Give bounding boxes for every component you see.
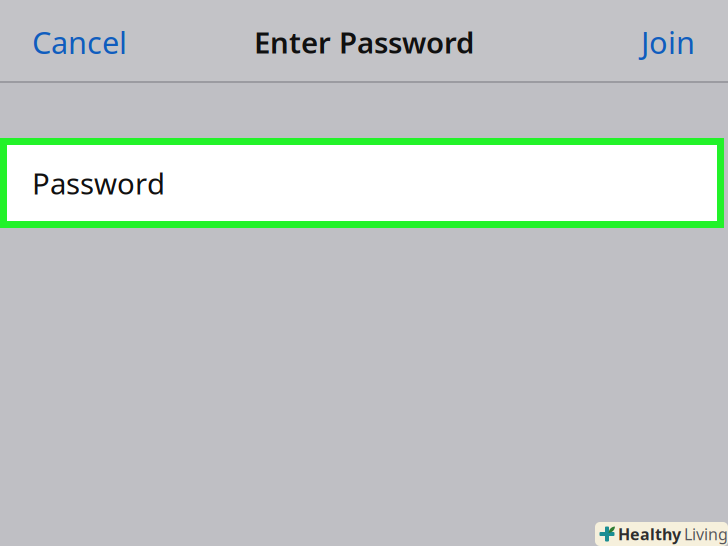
- staticText: Healthy: [618, 523, 681, 545]
- staticText: Password: [32, 163, 165, 202]
- staticText: Join: [641, 22, 695, 62]
- button[interactable]: Password: [7, 145, 717, 221]
- button[interactable]: Join: [621, 0, 728, 83]
- staticText: Living: [684, 523, 728, 545]
- staticText: Enter Password: [254, 22, 474, 61]
- staticText: Cancel: [32, 22, 127, 62]
- button[interactable]: Cancel: [0, 0, 147, 83]
